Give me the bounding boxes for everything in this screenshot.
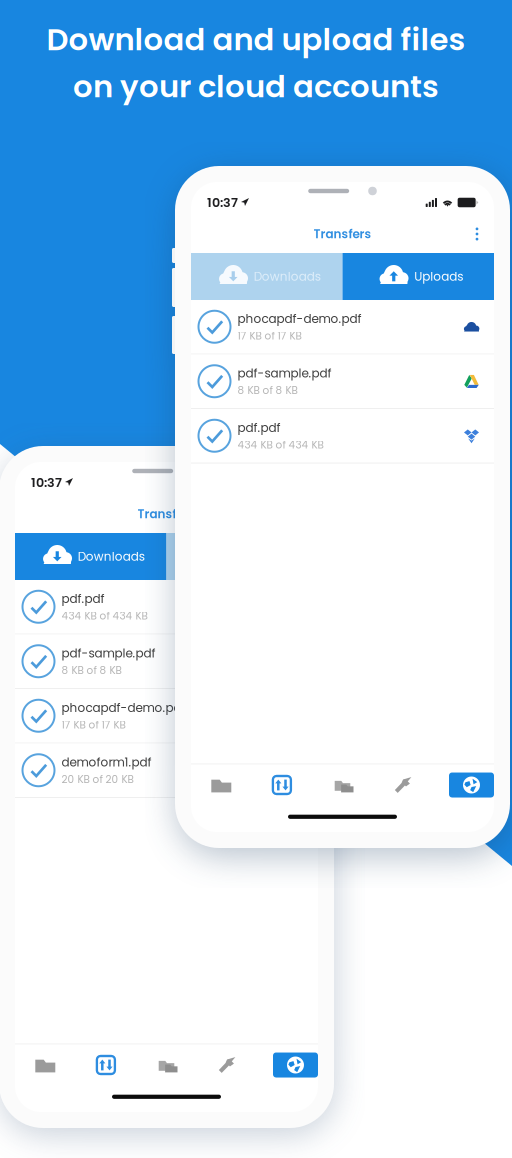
button[interactable]: phocapdf-demo.pdf — [15, 689, 318, 742]
staticText: 17 KB of 17 KB — [237, 329, 301, 343]
staticText: phocapdf-demo.pdf — [61, 699, 185, 716]
button[interactable]: Tools — [197, 1050, 257, 1080]
staticText: 8 KB of 8 KB — [237, 383, 297, 398]
staticText: 10:37 — [31, 474, 62, 491]
button[interactable]: Transfers — [76, 1050, 136, 1080]
button[interactable]: Tools — [373, 770, 433, 800]
staticText: phocapdf-demo.pdf — [237, 310, 361, 327]
button[interactable]: demoform1.pdf — [15, 743, 318, 797]
button[interactable]: Uploads — [342, 253, 494, 300]
button[interactable]: phocapdf-demo.pdf — [191, 300, 494, 353]
staticText: demoform1.pdf — [61, 754, 151, 771]
button[interactable]: pdf.pdf — [15, 580, 318, 633]
staticText: Uploads — [414, 268, 463, 285]
button[interactable]: Files — [191, 770, 252, 800]
button[interactable]: Downloads — [191, 253, 342, 300]
button[interactable]: Transfers — [252, 770, 312, 800]
staticText: 17 KB of 17 KB — [61, 718, 125, 732]
staticText: Downloads — [254, 268, 321, 285]
button[interactable]: pdf-sample.pdf — [191, 354, 494, 408]
button[interactable]: Uploads — [166, 533, 318, 580]
staticText: pdf-sample.pdf — [237, 365, 331, 382]
staticText: Transfers — [137, 506, 195, 522]
button[interactable]: pdf.pdf — [191, 409, 494, 462]
button[interactable]: Local folders — [136, 1050, 197, 1080]
staticText: 434 KB of 434 KB — [61, 609, 147, 623]
button[interactable]: Browser — [257, 1050, 318, 1080]
staticText: 8 KB of 8 KB — [61, 663, 121, 678]
button[interactable]: Browser — [433, 770, 494, 800]
button[interactable]: pdf-sample.pdf — [15, 634, 318, 688]
staticText: Download and upload files — [46, 18, 465, 61]
staticText: Transfers — [313, 226, 371, 242]
staticText: 434 KB of 434 KB — [237, 438, 323, 452]
button[interactable]: Local folders — [312, 770, 373, 800]
button[interactable]: Files — [15, 1050, 76, 1080]
staticText: Downloads — [78, 548, 145, 565]
button[interactable]: Downloads — [15, 533, 166, 580]
staticText: 10:37 — [207, 194, 238, 211]
staticText: on your cloud accounts — [73, 65, 439, 108]
staticText: pdf.pdf — [237, 419, 280, 436]
staticText: pdf-sample.pdf — [61, 645, 155, 662]
staticText: 20 KB of 20 KB — [61, 772, 133, 787]
button[interactable]: More options — [465, 222, 489, 246]
staticText: pdf.pdf — [61, 590, 104, 607]
